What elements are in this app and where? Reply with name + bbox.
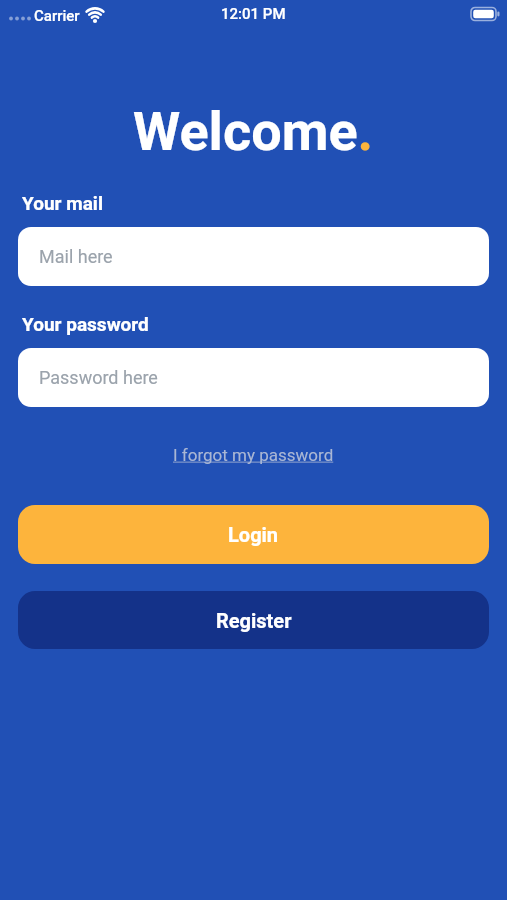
button[interactable]: Login bbox=[18, 505, 489, 564]
staticText: Your mail bbox=[22, 192, 103, 214]
button[interactable]: Password here bbox=[18, 348, 489, 407]
staticText: 12:01 PM bbox=[221, 5, 286, 23]
staticText: Mail here bbox=[39, 246, 113, 267]
staticText: Password here bbox=[39, 367, 158, 388]
button[interactable]: Register bbox=[18, 591, 489, 649]
staticText: Register bbox=[216, 609, 292, 632]
staticText: Carrier bbox=[34, 7, 80, 25]
staticText: Welcome. bbox=[133, 100, 374, 163]
button[interactable]: I forgot my password bbox=[173, 445, 334, 465]
staticText: Login bbox=[228, 523, 279, 546]
staticText: Your password bbox=[22, 313, 149, 335]
button[interactable]: Mail here bbox=[18, 227, 489, 286]
